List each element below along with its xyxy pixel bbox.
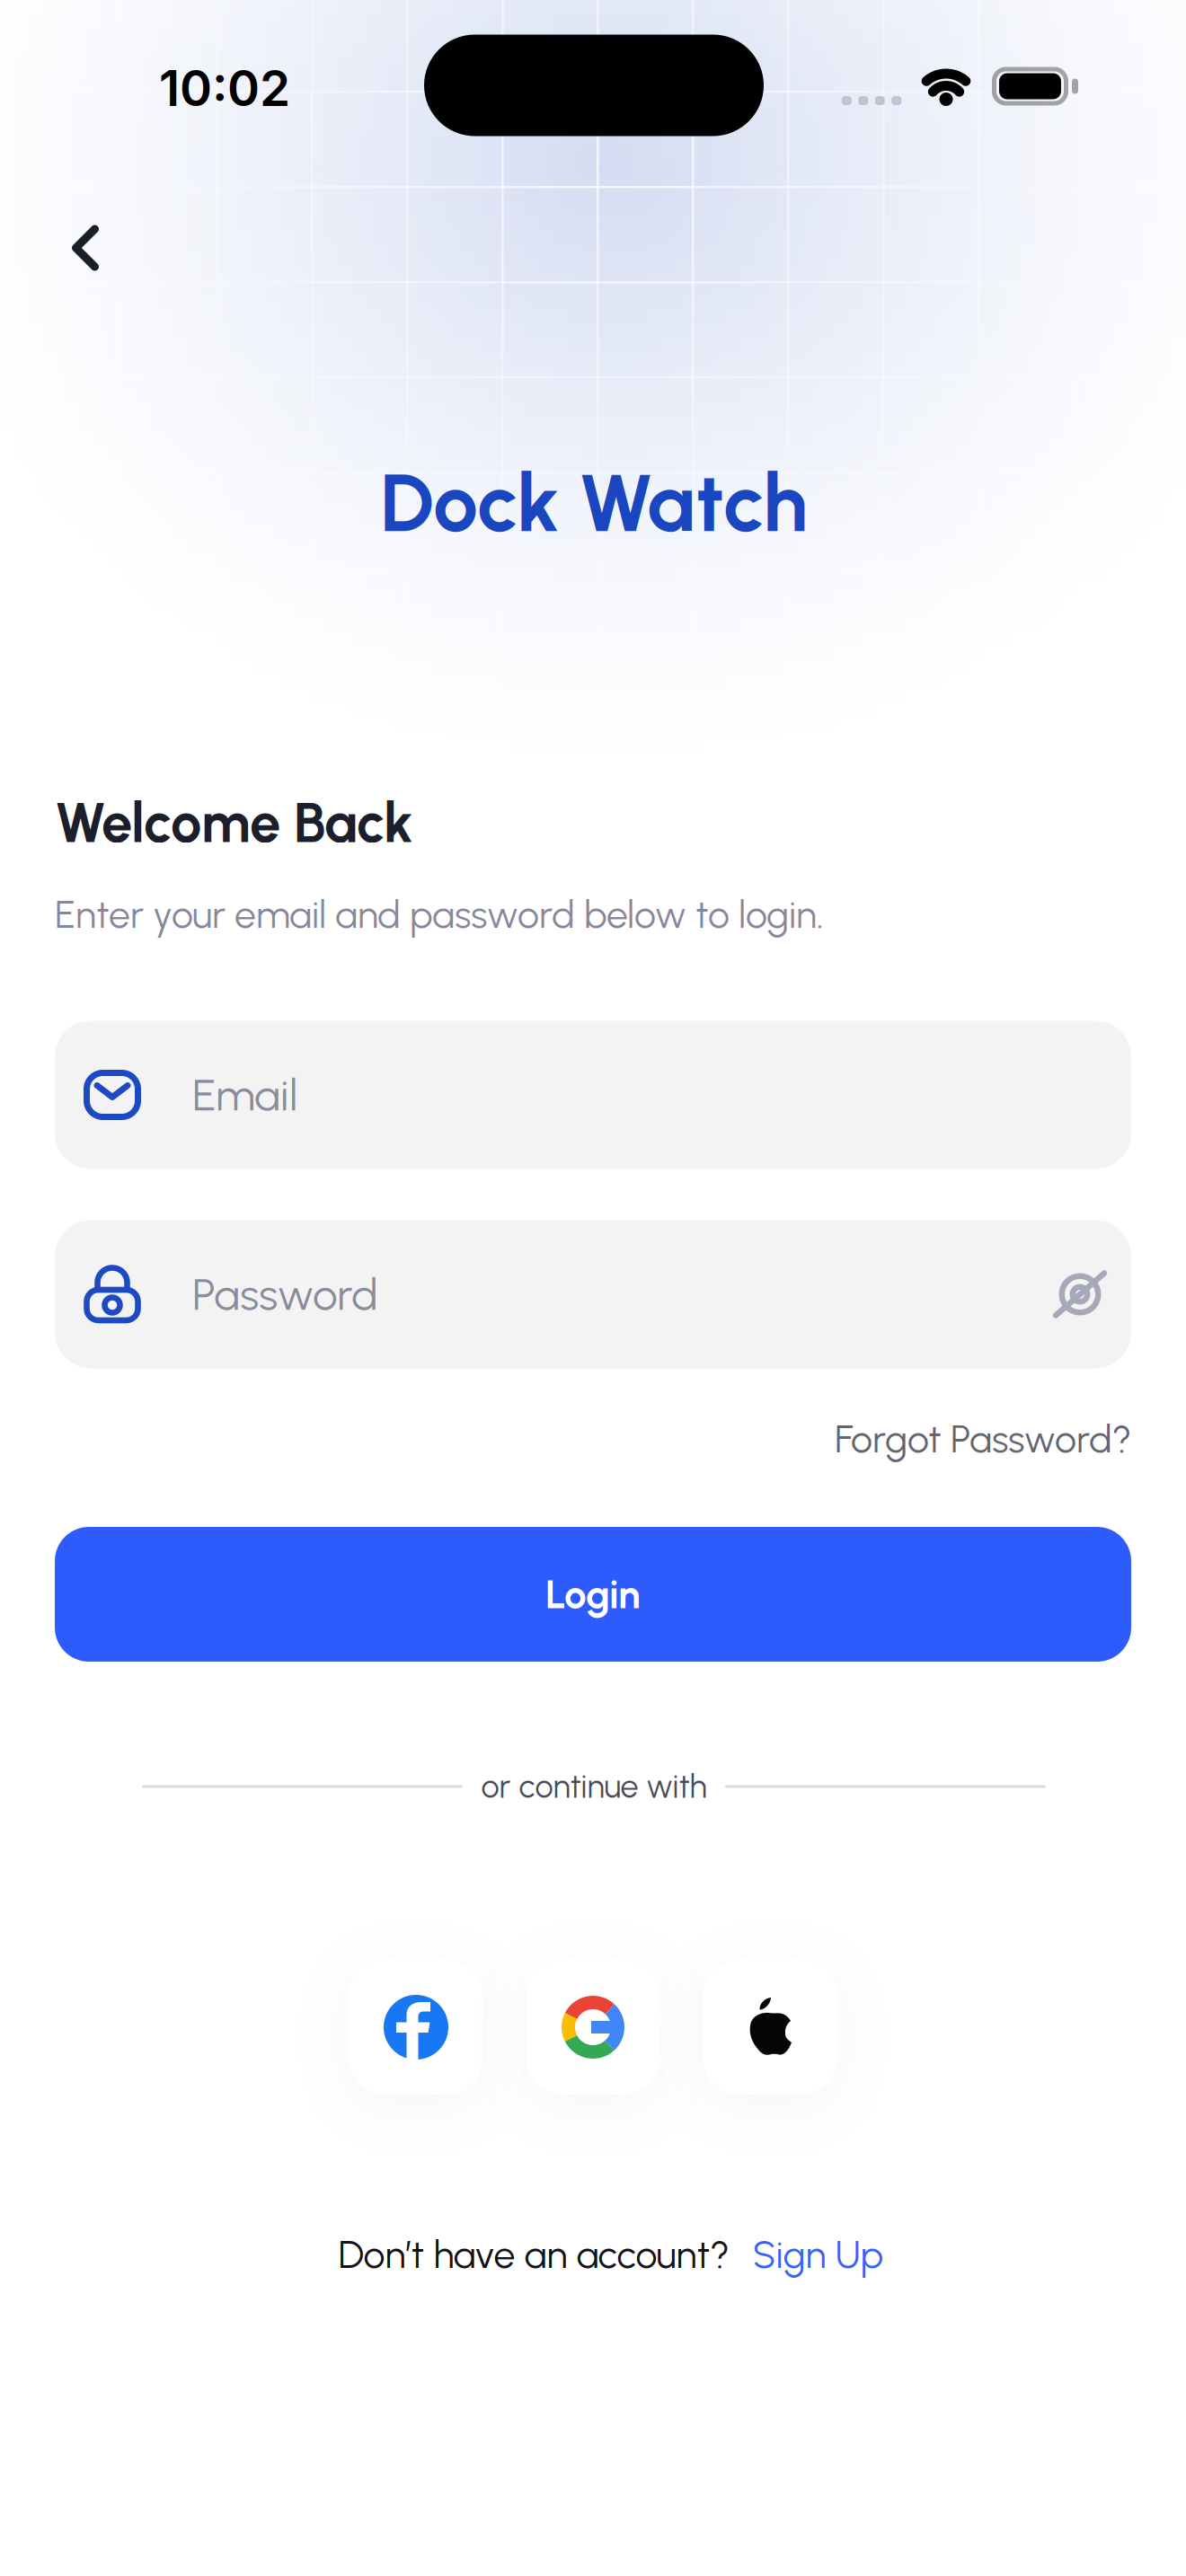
staticText: Forgot Password? [835, 1416, 1131, 1462]
button[interactable]: Forgot Password? [55, 1412, 1131, 1466]
staticText: Email [192, 1068, 297, 1121]
button[interactable]: Continue with Apple [703, 1960, 837, 2095]
staticText: Don’t have an account? [338, 2231, 729, 2277]
button[interactable]: Email [55, 1021, 1131, 1169]
staticText: 10:02 [159, 58, 290, 118]
staticText: Sign Up [752, 2231, 884, 2277]
staticText: Login [545, 1571, 641, 1618]
button[interactable]: Password [55, 1220, 1131, 1368]
button[interactable]: Continue with Google [526, 1960, 660, 2095]
staticText: Dock Watch [380, 455, 808, 551]
button[interactable]: Continue with Facebook [349, 1960, 483, 2095]
staticText: Enter your email and password below to l… [55, 891, 824, 937]
button[interactable]: Login [55, 1527, 1131, 1662]
button[interactable]: Back [40, 203, 130, 293]
staticText: or continue with [481, 1767, 707, 1806]
staticText: Password [192, 1268, 378, 1321]
staticText: Welcome Back [55, 790, 413, 856]
button[interactable]: Sign Up [752, 2231, 884, 2277]
